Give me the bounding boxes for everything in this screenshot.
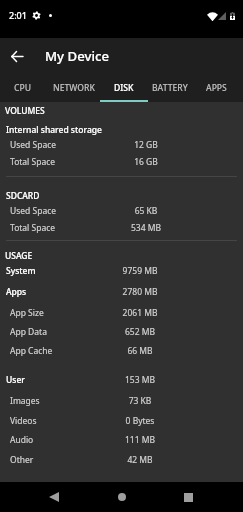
staticText: Total Space: [10, 222, 56, 234]
button[interactable]: Audio: [0, 434, 243, 450]
staticText: Other: [10, 454, 34, 466]
staticText: Total Space: [10, 156, 56, 168]
button[interactable]: DISK: [100, 75, 148, 102]
staticText: My Device: [45, 47, 109, 65]
staticText: 652 MB: [100, 326, 180, 338]
staticText: 73 KB: [100, 395, 180, 407]
staticText: BATTERY: [152, 82, 188, 94]
staticText: CPU: [14, 82, 32, 94]
staticText: 42 MB: [100, 454, 180, 466]
button[interactable]: NETWORK: [43, 75, 105, 102]
button[interactable]: Home: [107, 482, 137, 512]
staticText: Internal shared storage: [6, 124, 102, 136]
button[interactable]: Used Space: [0, 139, 243, 155]
button[interactable]: Used Space: [0, 205, 243, 221]
button[interactable]: Recent apps: [175, 482, 205, 512]
button[interactable]: Videos: [0, 415, 243, 431]
staticText: Videos: [10, 415, 37, 427]
staticText: DISK: [114, 82, 134, 94]
staticText: USAGE: [5, 250, 33, 262]
staticText: App Cache: [10, 345, 53, 357]
staticText: Used Space: [10, 139, 57, 151]
staticText: App Data: [10, 326, 47, 338]
button[interactable]: Total Space: [0, 222, 243, 238]
staticText: VOLUMES: [5, 105, 45, 117]
staticText: Audio: [10, 434, 34, 446]
button[interactable]: Other: [0, 454, 243, 470]
staticText: Used Space: [10, 205, 57, 217]
staticText: App Size: [10, 307, 44, 319]
staticText: 2:01: [9, 9, 27, 21]
staticText: System: [6, 265, 36, 277]
staticText: 66 MB: [100, 345, 180, 357]
staticText: 12 GB: [106, 139, 186, 151]
button[interactable]: Back: [0, 40, 34, 74]
button[interactable]: Total Space: [0, 156, 243, 172]
staticText: 0 Bytes: [100, 415, 180, 427]
staticText: 2061 MB: [100, 307, 180, 319]
staticText: 111 MB: [100, 434, 180, 446]
button[interactable]: App Cache: [0, 345, 243, 361]
staticText: 65 KB: [106, 205, 186, 217]
staticText: User: [6, 374, 25, 386]
button[interactable]: App Size: [0, 307, 243, 323]
staticText: 153 MB: [100, 374, 180, 386]
button[interactable]: System: [0, 265, 243, 281]
button[interactable]: User: [0, 374, 243, 390]
button[interactable]: SDCARD: [0, 190, 243, 206]
button[interactable]: App Data: [0, 326, 243, 342]
button[interactable]: Back: [38, 482, 68, 512]
staticText: Images: [10, 395, 40, 407]
button[interactable]: Apps: [0, 286, 243, 302]
staticText: 9759 MB: [100, 265, 180, 277]
staticText: NETWORK: [53, 82, 95, 94]
button[interactable]: APPS: [197, 75, 235, 102]
staticText: Apps: [6, 286, 27, 298]
staticText: APPS: [206, 82, 227, 94]
staticText: 16 GB: [106, 156, 186, 168]
staticText: SDCARD: [6, 190, 40, 202]
button[interactable]: BATTERY: [143, 75, 197, 102]
staticText: 2780 MB: [100, 286, 180, 298]
staticText: 534 MB: [106, 222, 186, 234]
button[interactable]: Internal shared storage: [0, 124, 243, 140]
button[interactable]: Images: [0, 395, 243, 411]
button[interactable]: CPU: [5, 75, 41, 102]
